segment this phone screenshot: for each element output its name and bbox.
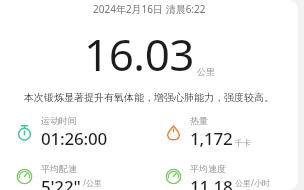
staticText: 公里/小时 [235, 177, 270, 188]
staticText: 16.03 [84, 24, 194, 84]
staticText: 平均配速 [41, 163, 77, 174]
other: Average pace [16, 168, 33, 185]
button[interactable]: Average speed [149, 163, 298, 190]
other: Average speed [165, 168, 182, 185]
staticText: 11.18 [190, 175, 233, 190]
button[interactable]: Average pace [0, 163, 149, 190]
staticText: 本次锻炼显著提升有氧体能，增强心肺能力，强度较高。 [24, 91, 274, 104]
staticText: 公里 [197, 66, 215, 77]
staticText: 千卡 [235, 138, 251, 148]
staticText: 运动时间 [41, 115, 77, 126]
staticText: 2024年2月16日 清晨6:22 [93, 2, 206, 16]
other: Calories [165, 124, 182, 141]
button[interactable]: Calories [149, 115, 298, 150]
button[interactable]: Duration [0, 115, 149, 150]
staticText: 1,172 [190, 127, 233, 150]
staticText: 01:26:00 [41, 127, 107, 150]
staticText: /公里 [83, 177, 102, 188]
staticText: 热量 [190, 115, 208, 126]
staticText: 5'22" [41, 175, 81, 190]
other: Duration [16, 124, 33, 141]
staticText: 平均速度 [190, 163, 226, 174]
